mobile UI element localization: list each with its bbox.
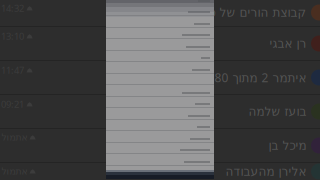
button[interactable]: אתמול [0,129,320,162]
button[interactable]: 14:32 [0,0,320,26]
staticText: אלירן מהעבודה [225,165,306,178]
staticText: אתמול [1,132,27,143]
button[interactable]: אתמול [0,163,320,180]
staticText: מיכל בן [268,139,306,152]
staticText: אתמול [1,166,27,177]
staticText: 13:10 [1,30,24,42]
staticText: איתמר 2 מתוך 80 [214,69,306,85]
button[interactable]: 09:21 [0,95,320,128]
staticText: 11:47 [1,64,24,76]
staticText: רן אבגי [269,37,306,50]
staticText: קבוצת הורים של כיתה [190,6,306,19]
button[interactable]: 13:10 [0,27,320,60]
staticText: 14:32 [1,2,24,14]
staticText: בועז שלמה [248,105,306,118]
button[interactable]: 11:47 [0,61,320,94]
staticText: 09:21 [1,98,24,110]
